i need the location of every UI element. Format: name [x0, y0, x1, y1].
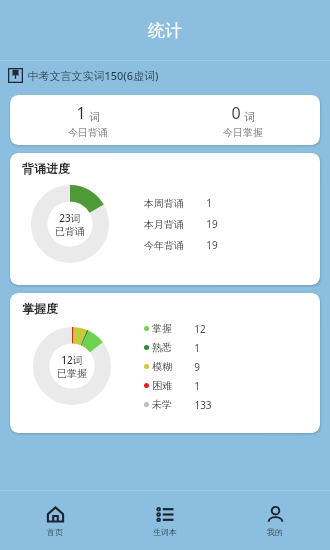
- button[interactable]: 首页: [0, 491, 110, 550]
- staticText: 今年背诵: [144, 239, 184, 252]
- staticText: 1: [194, 341, 200, 355]
- staticText: 词: [89, 110, 100, 124]
- button[interactable]: 1: [10, 95, 320, 145]
- button[interactable]: 1: [10, 102, 165, 139]
- button[interactable]: Book: [0, 61, 330, 89]
- other: Book: [8, 68, 23, 83]
- other: 生词本: [156, 505, 175, 524]
- staticText: 困难: [152, 379, 172, 392]
- staticText: 1: [206, 196, 212, 210]
- staticText: 本月背诵: [144, 218, 184, 231]
- staticText: 133: [194, 398, 212, 412]
- staticText: 已背诵: [55, 225, 85, 238]
- staticText: 23词: [59, 211, 81, 225]
- staticText: 背诵进度: [22, 161, 70, 176]
- staticText: 今日背诵: [68, 126, 108, 139]
- staticText: 19: [206, 217, 218, 231]
- staticText: 12词: [61, 353, 83, 367]
- staticText: 统计: [148, 20, 182, 41]
- button[interactable]: 我的: [220, 491, 330, 550]
- other: 首页: [46, 505, 65, 524]
- staticText: 中考文言文实词150(6虚词): [27, 68, 159, 83]
- staticText: 模糊: [152, 360, 172, 373]
- button[interactable]: 掌握度: [10, 293, 320, 433]
- button[interactable]: 生词本: [110, 491, 220, 550]
- staticText: 词: [244, 110, 255, 124]
- staticText: 9: [194, 360, 200, 374]
- staticText: 掌握: [152, 322, 172, 335]
- button[interactable]: 0: [165, 102, 320, 139]
- staticText: 0: [231, 102, 241, 124]
- staticText: 生词本: [153, 527, 177, 537]
- staticText: 19: [206, 238, 218, 252]
- staticText: 未学: [152, 398, 172, 411]
- staticText: 我的: [267, 527, 283, 537]
- other: 我的: [266, 505, 285, 524]
- staticText: 今日掌握: [223, 126, 263, 139]
- staticText: 首页: [47, 527, 63, 537]
- staticText: 掌握度: [22, 301, 58, 316]
- staticText: 已掌握: [57, 367, 87, 380]
- staticText: 1: [76, 102, 86, 124]
- staticText: 本周背诵: [144, 197, 184, 210]
- staticText: 12: [194, 322, 206, 336]
- button[interactable]: 背诵进度: [10, 153, 320, 285]
- staticText: 1: [194, 379, 200, 393]
- staticText: 熟悉: [152, 341, 172, 354]
